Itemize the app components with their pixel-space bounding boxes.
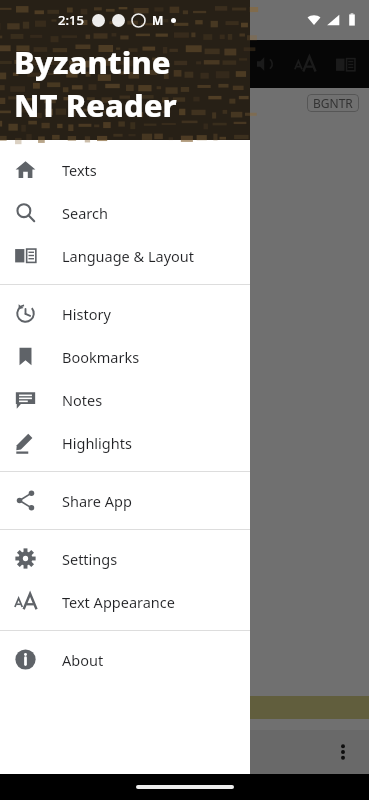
staticText: ρόσωπόν xyxy=(2,172,76,195)
staticText: Bookmarks xyxy=(62,347,140,367)
staticText: Texts xyxy=(62,160,97,180)
button[interactable]: Text size xyxy=(285,44,325,84)
staticText: History xyxy=(62,304,111,324)
button[interactable]: More options xyxy=(323,732,363,772)
staticText: Language & Layout xyxy=(62,246,195,266)
button[interactable]: Texts xyxy=(0,148,250,191)
button[interactable]: About xyxy=(0,638,250,681)
button[interactable]: Highlights xyxy=(0,421,250,464)
button[interactable]: History xyxy=(0,292,250,335)
staticText: καὶ xyxy=(2,556,28,579)
button[interactable]: Language & Layout xyxy=(0,234,250,277)
staticText: ηθὼς xyxy=(2,584,45,607)
staticText: ὑμῖν εἰμι, xyxy=(2,434,76,457)
staticText: των ἐν xyxy=(2,228,54,251)
staticText: About xyxy=(62,650,104,670)
staticText: λικον ἀγῶνα xyxy=(2,116,101,139)
staticText: Share App xyxy=(62,491,132,511)
staticText: NT Reader xyxy=(14,84,177,126)
staticText: ωσιν αἱ xyxy=(2,200,61,223)
staticText: και τῆς xyxy=(2,340,59,363)
staticText: ου εἰσὶν xyxy=(2,312,65,335)
staticText: Search xyxy=(62,203,108,223)
staticText: ιας καὶ xyxy=(2,668,56,691)
button[interactable]: Text Appearance xyxy=(0,580,250,623)
staticText: Text Appearance xyxy=(62,592,175,612)
button[interactable]: BGNTR xyxy=(313,95,353,111)
staticText: τάξιν, καὶ xyxy=(2,462,77,485)
staticText: ης xyxy=(2,256,21,279)
button[interactable]: Audio xyxy=(245,44,285,84)
staticText: ον χριστόν xyxy=(2,518,88,541)
button[interactable]: Bookmarks xyxy=(0,335,250,378)
staticText: M xyxy=(152,12,164,28)
button[interactable]: Book xyxy=(325,44,365,84)
staticText: Highlights xyxy=(62,433,132,453)
staticText: Notes xyxy=(62,390,103,410)
staticText: 2:15 xyxy=(58,11,84,29)
staticText: σαρκὶ xyxy=(2,406,48,429)
staticText: ὑμᾶς ἔσται ὁ xyxy=(2,640,104,663)
staticText: πίστεως xyxy=(2,490,67,513)
staticText: αὐτῇ ἐν xyxy=(2,612,63,635)
staticText: Λαοδικείᾳ, xyxy=(2,144,87,167)
button[interactable]: Share App xyxy=(0,479,250,522)
staticText: Byzantine xyxy=(14,41,171,83)
staticText: θεοῦ καὶ xyxy=(2,284,70,307)
button[interactable]: Notes xyxy=(0,378,250,421)
button[interactable]: Search xyxy=(0,191,250,234)
staticText: BGNTR xyxy=(313,95,353,111)
button[interactable]: Settings xyxy=(0,537,250,580)
staticText: Settings xyxy=(62,549,118,569)
